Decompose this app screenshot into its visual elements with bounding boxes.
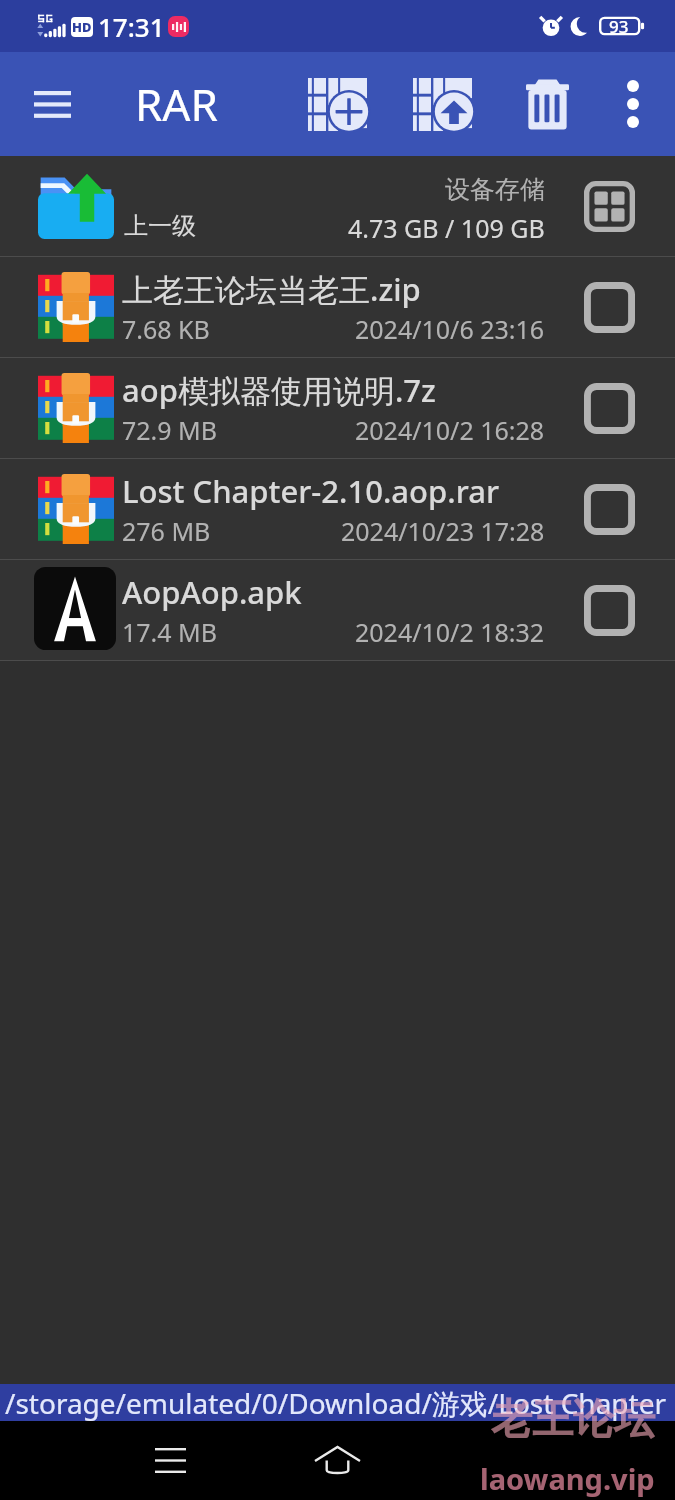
staticText: RAR: [135, 74, 218, 134]
staticText: 老王论坛: [491, 1394, 655, 1446]
button[interactable]: More options: [592, 52, 674, 156]
button[interactable]: Recent apps: [125, 1421, 215, 1500]
staticText: 设备存储: [122, 174, 545, 205]
staticText: HD: [72, 18, 92, 36]
staticText: laowang.vip: [480, 1459, 655, 1498]
button[interactable]: 上老王论坛当老王.zip: [0, 257, 675, 357]
staticText: 17:31: [98, 9, 165, 44]
button[interactable]: Extract archive: [381, 52, 503, 156]
button[interactable]: Back: [460, 1421, 550, 1500]
staticText: 2024/10/23 17:28: [341, 514, 545, 548]
button[interactable]: Add to archive: [293, 52, 381, 156]
button[interactable]: Select file: [545, 358, 675, 458]
button[interactable]: aop模拟器使用说明.7z: [0, 358, 675, 458]
staticText: AopAop.apk: [122, 571, 302, 613]
staticText: 17.4 MB: [122, 615, 218, 649]
button[interactable]: AopAop.apk: [0, 560, 675, 660]
button[interactable]: 设备存储: [0, 156, 675, 256]
staticText: aop模拟器使用说明.7z: [122, 369, 436, 411]
button[interactable]: Home: [292, 1421, 382, 1500]
button[interactable]: Switch view layout: [545, 156, 675, 256]
button[interactable]: Select file: [545, 560, 675, 660]
staticText: 72.9 MB: [122, 413, 218, 447]
staticText: 2024/10/2 18:32: [355, 615, 545, 649]
staticText: 276 MB: [122, 514, 211, 548]
staticText: Lost Chapter-2.10.aop.rar: [122, 470, 500, 512]
button[interactable]: Lost Chapter-2.10.aop.rar: [0, 459, 675, 559]
staticText: 2024/10/6 23:16: [355, 312, 545, 346]
button[interactable]: Select file: [545, 257, 675, 357]
staticText: 93: [609, 15, 629, 38]
staticText: 上老王论坛当老王.zip: [122, 268, 421, 310]
staticText: /storage/emulated/0/Download/游戏/Lost Cha…: [5, 1384, 667, 1421]
button[interactable]: Select file: [545, 459, 675, 559]
staticText: 2024/10/2 16:28: [355, 413, 545, 447]
staticText: 7.68 KB: [122, 312, 210, 346]
staticText: 4.73 GB / 109 GB: [348, 211, 545, 245]
button[interactable]: Open navigation menu: [10, 52, 94, 156]
button[interactable]: Delete: [503, 52, 592, 156]
staticText: 上一级: [124, 211, 196, 241]
